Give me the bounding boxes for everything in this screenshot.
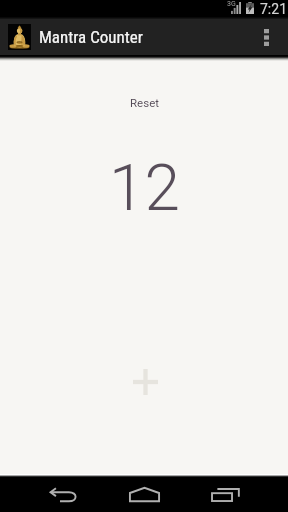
staticText: Reset [130,96,159,109]
button[interactable]: Recent apps [191,477,259,512]
staticText: Mantra Counter [39,27,143,47]
button[interactable]: Increment counter [122,359,168,405]
staticText: 7:21 [260,1,287,17]
button[interactable]: Home [110,477,178,512]
button[interactable]: Mantra Counter [0,19,151,55]
staticText: 12 [109,151,180,226]
button[interactable]: More options [252,19,288,55]
button[interactable]: Back [29,477,97,512]
button[interactable]: Reset [124,93,164,111]
staticText: 3G [227,0,236,8]
